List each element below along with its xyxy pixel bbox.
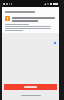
button[interactable] (2, 9, 59, 14)
button[interactable] (4, 84, 57, 90)
button[interactable]: Info (53, 41, 57, 45)
button[interactable] (2, 93, 59, 97)
